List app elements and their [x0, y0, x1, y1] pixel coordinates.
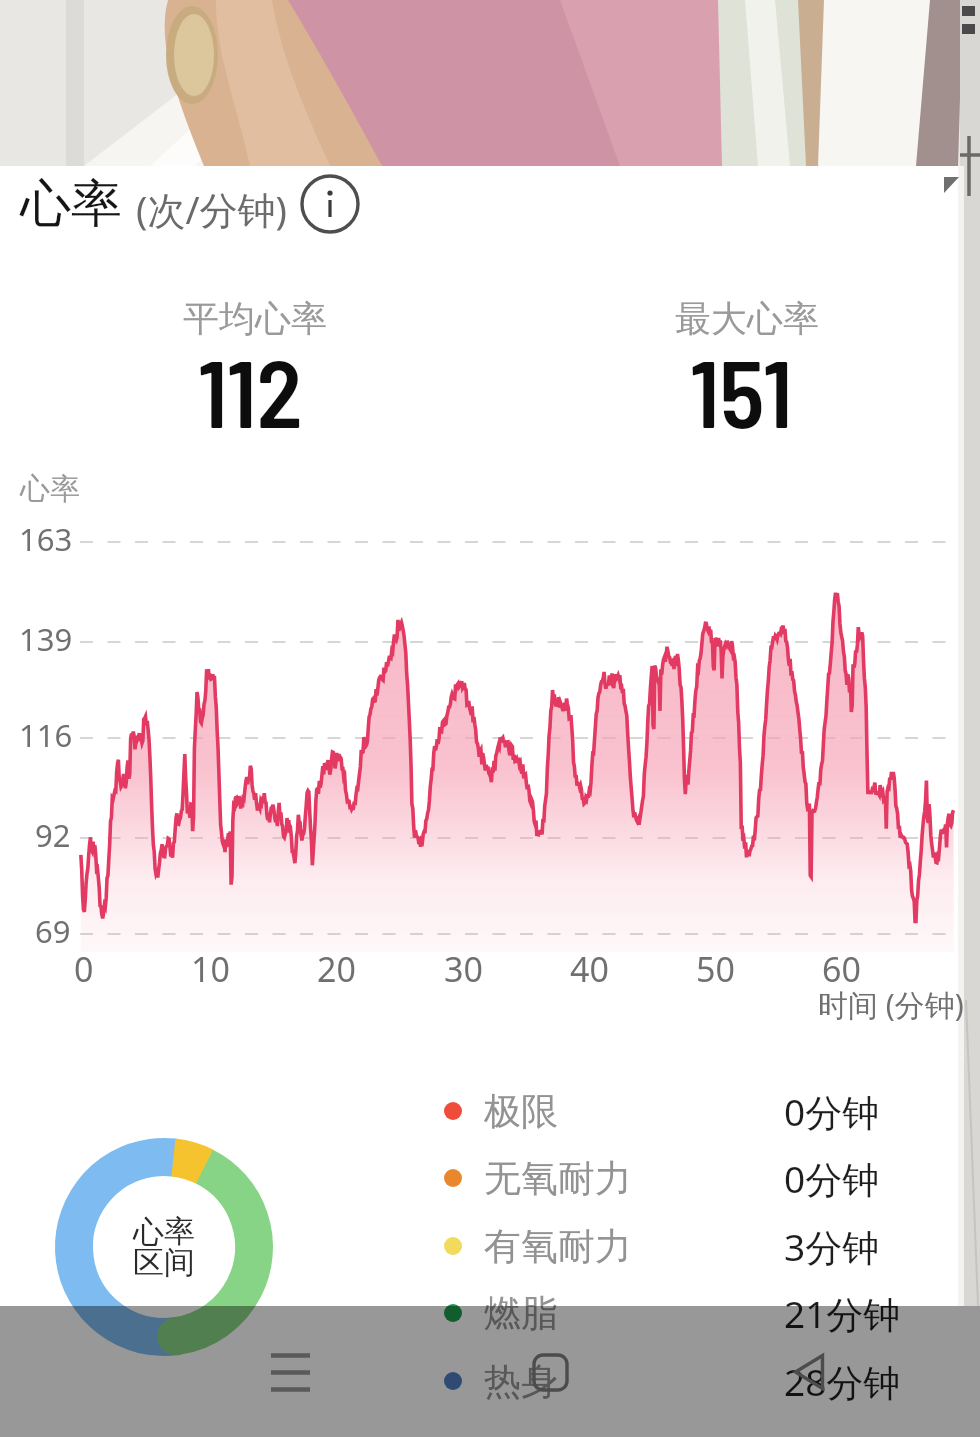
- staticText: 3分钟: [784, 1221, 914, 1272]
- staticText: (次/分钟): [136, 183, 287, 235]
- staticText: 心率: [20, 172, 122, 236]
- button[interactable]: 热身: [444, 1348, 914, 1414]
- staticText: 20: [317, 946, 356, 992]
- button[interactable]: Info: [300, 174, 360, 234]
- button[interactable]: 极限: [444, 1078, 914, 1144]
- button[interactable]: 燃脂: [444, 1280, 914, 1346]
- staticText: 92: [35, 814, 71, 856]
- button[interactable]: Back: [759, 1327, 859, 1417]
- staticText: 21分钟: [784, 1288, 914, 1339]
- staticText: 60: [822, 946, 861, 992]
- staticText: 50: [696, 946, 735, 992]
- staticText: 极限: [484, 1088, 558, 1135]
- button[interactable]: Menu: [240, 1327, 340, 1417]
- staticText: 69: [35, 910, 71, 952]
- staticText: 40: [570, 946, 609, 992]
- staticText: 心率: [20, 470, 80, 508]
- staticText: 139: [19, 618, 73, 660]
- staticText: 区间: [133, 1243, 195, 1282]
- staticText: 0: [74, 946, 94, 992]
- staticText: 0分钟: [784, 1153, 914, 1204]
- staticText: 热身: [484, 1358, 558, 1405]
- staticText: 28分钟: [784, 1356, 914, 1407]
- staticText: 30: [444, 946, 483, 992]
- button[interactable]: 无氧耐力: [444, 1145, 914, 1211]
- staticText: 163: [19, 518, 73, 560]
- button[interactable]: 有氧耐力: [444, 1213, 914, 1279]
- staticText: 心率: [133, 1212, 195, 1251]
- staticText: 116: [19, 714, 73, 756]
- staticText: 最大心率: [675, 296, 819, 341]
- button[interactable]: Recents: [500, 1327, 600, 1417]
- staticText: 151: [690, 334, 793, 447]
- staticText: 无氧耐力: [484, 1155, 632, 1202]
- staticText: 112: [198, 334, 303, 447]
- staticText: 10: [191, 946, 230, 992]
- staticText: 0分钟: [784, 1086, 914, 1137]
- staticText: 燃脂: [484, 1290, 558, 1337]
- staticText: 时间 (分钟): [818, 984, 964, 1025]
- staticText: 有氧耐力: [484, 1223, 632, 1270]
- staticText: 平均心率: [183, 296, 327, 341]
